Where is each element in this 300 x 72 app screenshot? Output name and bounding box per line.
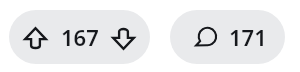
button[interactable]: Downvote [99,10,147,64]
button[interactable]: 171 [170,10,285,64]
staticText: 167 [61,22,99,52]
staticText: 171 [229,22,267,52]
button[interactable]: Upvote [9,10,61,64]
